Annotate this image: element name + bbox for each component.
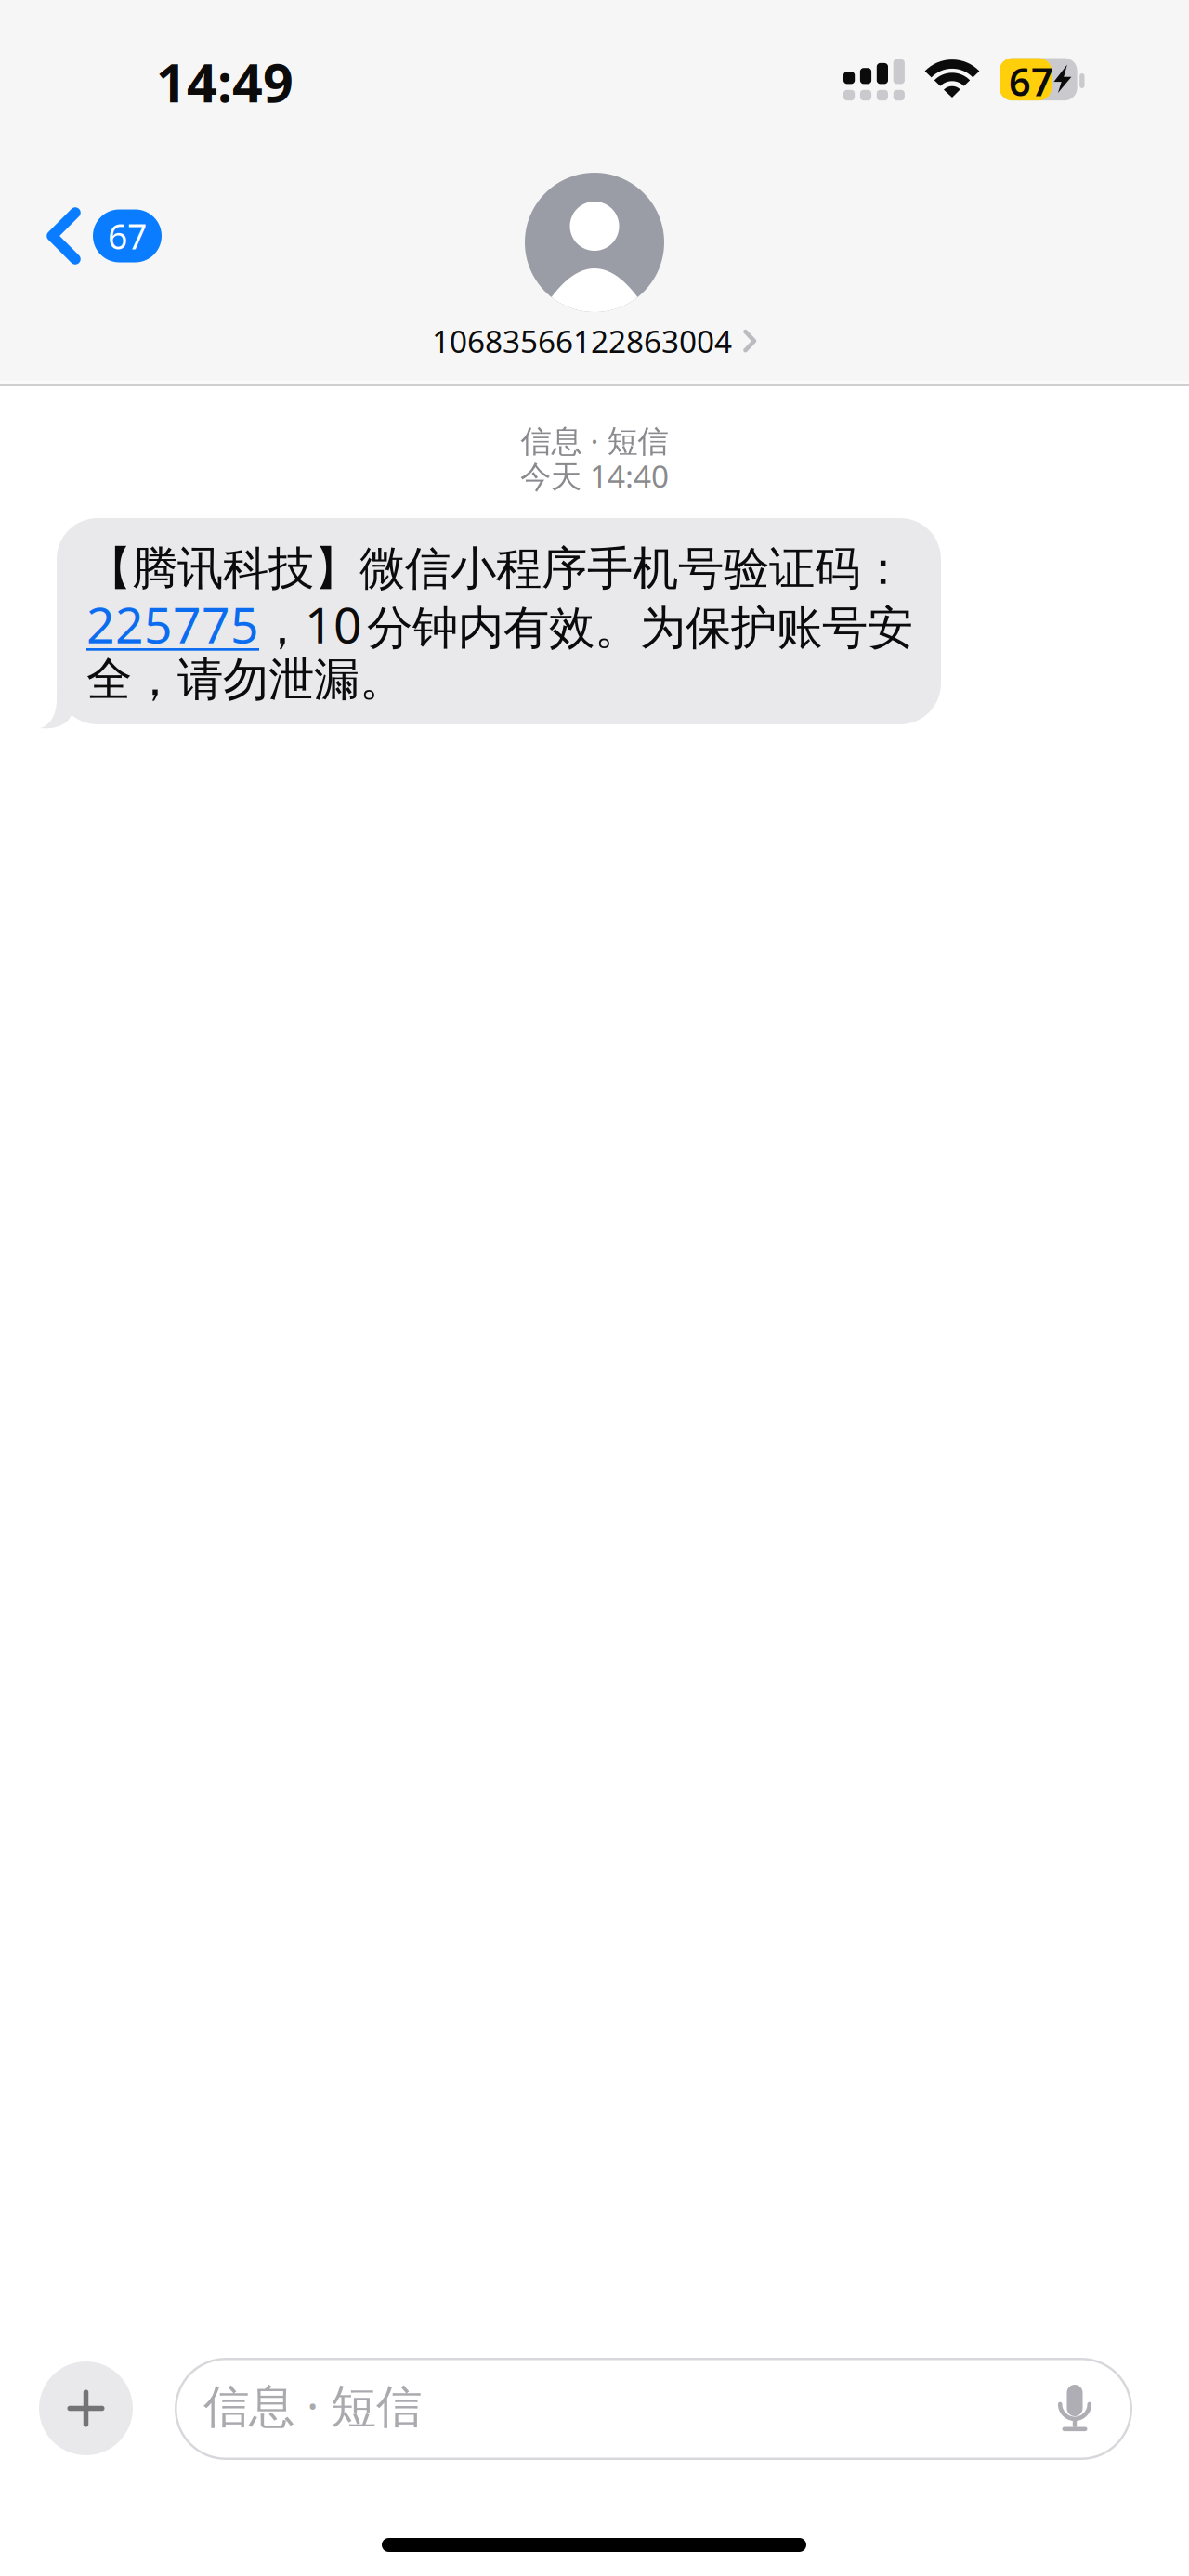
staticText: 67 <box>108 213 147 259</box>
staticText: 今天 14:40 <box>520 455 669 496</box>
staticText: 分钟内有效。为保护账号安 <box>367 600 913 656</box>
staticText: 全，请勿泄漏。 <box>86 651 405 708</box>
button[interactable]: 信息 · 短信 <box>175 2358 1132 2460</box>
staticText: 10 <box>305 591 362 657</box>
button[interactable]: 【腾讯科技】微信小程序手机号验证码： <box>57 518 941 724</box>
staticText: 【腾讯科技】微信小程序手机号验证码： <box>86 540 906 597</box>
staticText: 14:49 <box>156 46 294 117</box>
button[interactable]: Add attachment <box>39 2361 133 2455</box>
staticText: 67 <box>1009 56 1053 107</box>
staticText: ， <box>259 600 305 656</box>
button[interactable]: 10683566122863004 <box>0 173 1189 362</box>
staticText: 10683566122863004 <box>432 320 732 362</box>
button[interactable]: Back to Messages, 67 unread <box>37 199 171 273</box>
staticText: 信息 · 短信 <box>521 420 668 461</box>
staticText: 信息 · 短信 <box>203 2374 422 2435</box>
staticText: 225775 <box>86 591 259 657</box>
